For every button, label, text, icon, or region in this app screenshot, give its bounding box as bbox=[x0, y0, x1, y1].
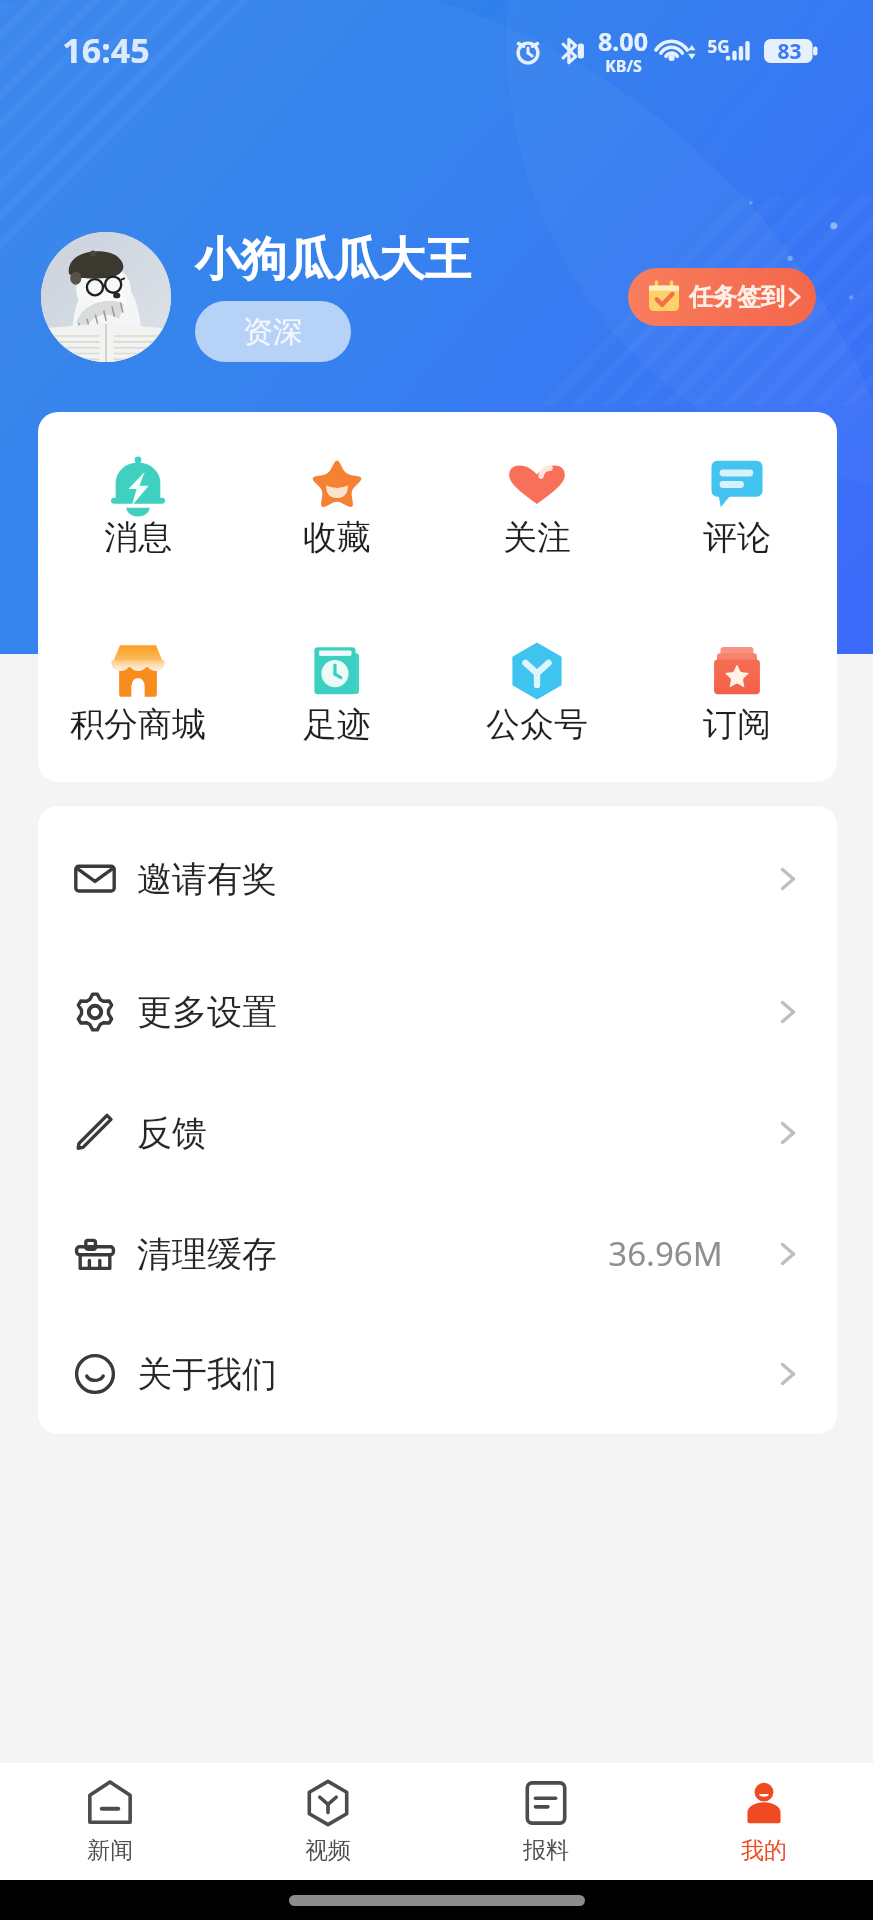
staticText: 5G bbox=[707, 35, 730, 58]
staticText: 评论 bbox=[703, 516, 771, 559]
staticText: 83 bbox=[777, 37, 802, 66]
button[interactable]: 积分商城 bbox=[38, 642, 237, 746]
staticText: 订阅 bbox=[703, 703, 771, 746]
staticText: 足迹 bbox=[303, 703, 371, 746]
staticText: 公众号 bbox=[486, 703, 588, 746]
button[interactable]: 任务签到 bbox=[628, 268, 816, 326]
button[interactable]: 评论 bbox=[637, 455, 837, 559]
staticText: 我的 bbox=[741, 1836, 787, 1865]
staticText: 关于我们 bbox=[137, 1352, 277, 1396]
button[interactable]: 报料 bbox=[437, 1763, 655, 1880]
staticText: 小狗瓜瓜大王 bbox=[195, 231, 471, 289]
button[interactable]: 关于我们 bbox=[38, 1314, 837, 1434]
button[interactable]: 资深 bbox=[195, 301, 351, 362]
staticText: 反馈 bbox=[137, 1111, 207, 1155]
button[interactable]: 反馈 bbox=[38, 1072, 837, 1193]
staticText: 关注 bbox=[503, 516, 571, 559]
staticText: 清理缓存 bbox=[137, 1232, 277, 1276]
button[interactable]: 订阅 bbox=[637, 642, 837, 746]
staticText: 8.00 bbox=[598, 24, 648, 58]
staticText: KB/S bbox=[605, 55, 642, 77]
staticText: 任务签到 bbox=[689, 282, 785, 312]
button[interactable]: 新闻 bbox=[0, 1763, 219, 1880]
staticText: 收藏 bbox=[303, 516, 371, 559]
button[interactable]: 视频 bbox=[219, 1763, 437, 1880]
staticText: 邀请有奖 bbox=[137, 857, 277, 901]
button[interactable]: Avatar bbox=[41, 232, 171, 362]
staticText: 新闻 bbox=[87, 1836, 133, 1865]
staticText: 报料 bbox=[523, 1836, 569, 1865]
staticText: 消息 bbox=[104, 516, 172, 559]
button[interactable]: 关注 bbox=[437, 455, 637, 559]
button[interactable]: 清理缓存 bbox=[38, 1193, 837, 1314]
staticText: 36.96M bbox=[608, 1231, 723, 1276]
button[interactable]: 足迹 bbox=[237, 642, 437, 746]
button[interactable]: 邀请有奖 bbox=[38, 806, 837, 951]
button[interactable]: 消息 bbox=[38, 455, 237, 559]
staticText: 16:45 bbox=[62, 27, 150, 73]
button[interactable]: 公众号 bbox=[437, 642, 637, 746]
button[interactable]: 收藏 bbox=[237, 455, 437, 559]
staticText: 积分商城 bbox=[70, 703, 206, 746]
button[interactable]: 更多设置 bbox=[38, 951, 837, 1072]
staticText: 资深 bbox=[243, 313, 303, 351]
staticText: 更多设置 bbox=[137, 990, 277, 1034]
staticText: 视频 bbox=[305, 1836, 351, 1865]
button[interactable]: 我的 bbox=[655, 1763, 873, 1880]
